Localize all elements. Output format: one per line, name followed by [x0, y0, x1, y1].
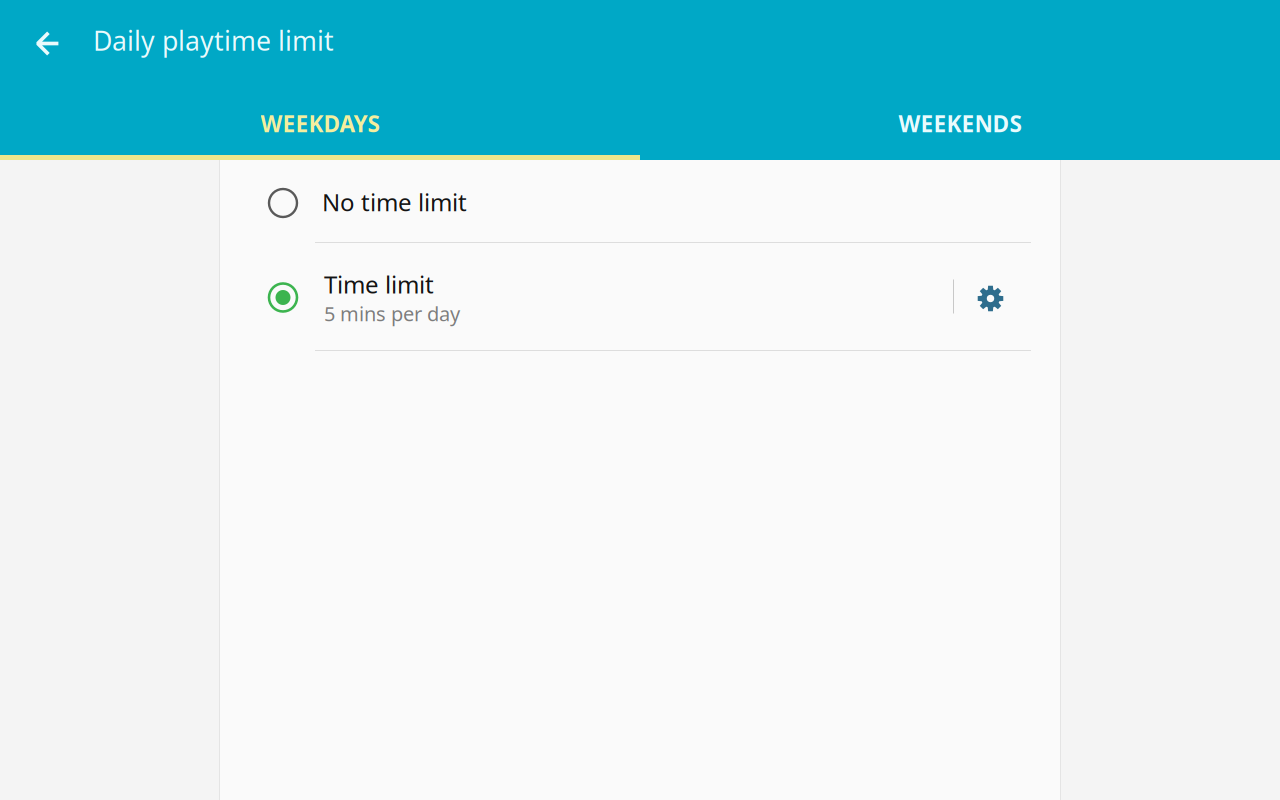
button[interactable]: Time limit settings	[954, 243, 1061, 350]
staticText: 5 mins per day	[324, 300, 460, 327]
button[interactable]: No time limit	[219, 160, 1061, 242]
staticText: Time limit	[324, 268, 434, 300]
button[interactable]: WEEKENDS	[640, 87, 1280, 160]
button[interactable]: Back	[24, 19, 72, 67]
button[interactable]: Time limit	[219, 243, 953, 350]
staticText: No time limit	[322, 186, 467, 218]
staticText: Daily playtime limit	[93, 23, 334, 58]
staticText: WEEKDAYS	[260, 108, 379, 138]
staticText: WEEKENDS	[898, 108, 1021, 138]
button[interactable]: WEEKDAYS	[0, 87, 640, 160]
